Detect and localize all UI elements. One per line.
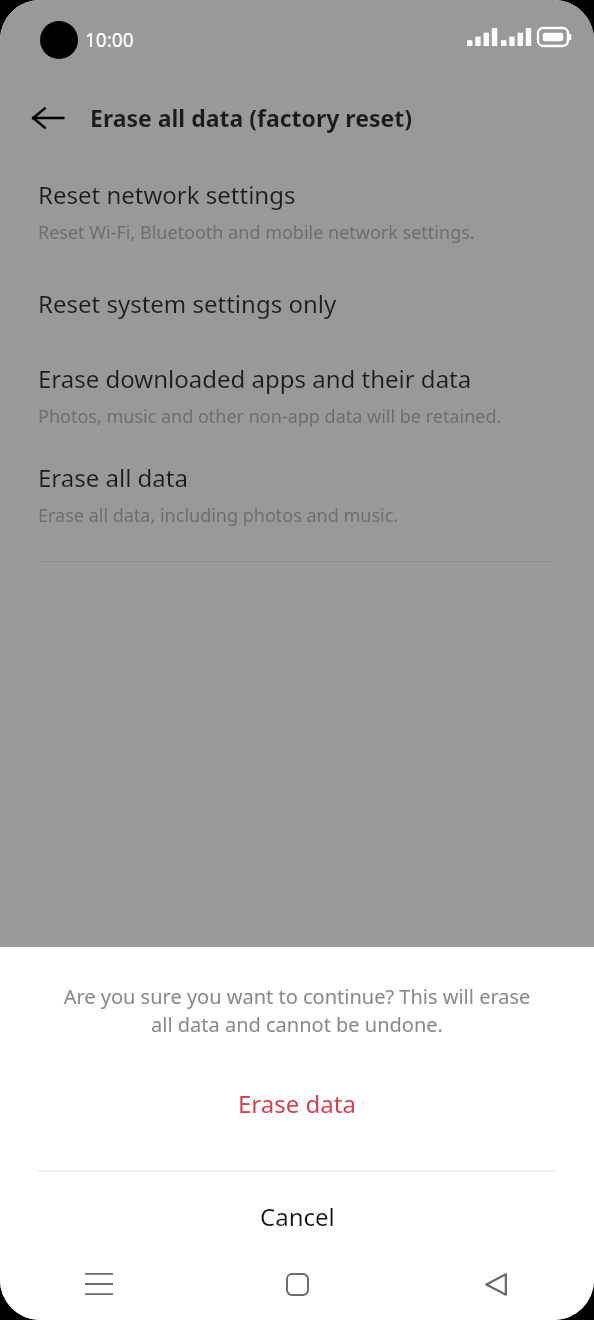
staticText: Erase data: [238, 1087, 356, 1120]
button[interactable]: Home: [198, 1248, 396, 1320]
staticText: Are you sure you want to continue? This …: [60, 983, 534, 1038]
button[interactable]: Recent apps: [0, 1248, 198, 1320]
button[interactable]: Erase all data: [0, 461, 594, 528]
button[interactable]: Reset system settings only: [0, 287, 594, 320]
staticText: 10:00: [85, 27, 134, 53]
button[interactable]: Erase data: [0, 1072, 594, 1134]
staticText: Erase all data, including photos and mus…: [38, 503, 399, 528]
staticText: Reset system settings only: [38, 287, 337, 320]
staticText: Reset Wi-Fi, Bluetooth and mobile networ…: [38, 220, 475, 245]
button[interactable]: Cancel: [0, 1172, 594, 1260]
button[interactable]: Erase downloaded apps and their data: [0, 362, 594, 429]
staticText: Erase all data: [38, 461, 188, 494]
staticText: Erase downloaded apps and their data: [38, 362, 472, 395]
staticText: Erase all data (factory reset): [90, 102, 412, 133]
button[interactable]: Back: [20, 90, 76, 146]
button[interactable]: Back: [396, 1248, 594, 1320]
staticText: Cancel: [260, 1200, 335, 1233]
staticText: Photos, music and other non-app data wil…: [38, 404, 502, 429]
staticText: Reset network settings: [38, 178, 296, 211]
button[interactable]: Reset network settings: [0, 178, 594, 245]
